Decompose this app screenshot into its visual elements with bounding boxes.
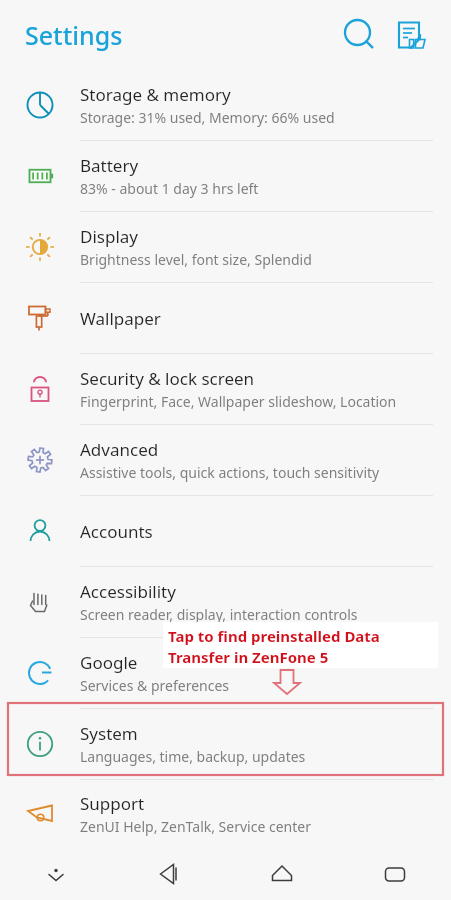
button[interactable]: Battery: [0, 141, 451, 212]
staticText: Languages, time, backup, updates: [80, 747, 306, 766]
button[interactable]: Accounts: [0, 496, 451, 567]
button[interactable]: Storage & memory: [0, 70, 451, 141]
button[interactable]: Security & lock screen: [0, 354, 451, 425]
staticText: Settings: [25, 18, 123, 52]
staticText: Accounts: [80, 520, 153, 543]
staticText: Tap to find preinstalled Data Transfer i…: [168, 626, 380, 668]
staticText: Screen reader, display, interaction cont…: [80, 605, 358, 624]
staticText: Display: [80, 225, 138, 248]
staticText: Security & lock screen: [80, 367, 255, 390]
staticText: Battery: [80, 154, 139, 177]
staticText: Storage & memory: [80, 83, 231, 106]
staticText: Assistive tools, quick actions, touch se…: [80, 463, 380, 482]
button[interactable]: Search: [333, 9, 385, 61]
button[interactable]: Hide navigation bar: [0, 848, 112, 900]
button[interactable]: Back: [112, 848, 225, 900]
button[interactable]: Advanced: [0, 425, 451, 496]
button[interactable]: Accessibility: [0, 567, 451, 638]
button[interactable]: Recent apps: [338, 848, 451, 900]
button[interactable]: Display: [0, 212, 451, 283]
staticText: Brightness level, font size, Splendid: [80, 250, 312, 269]
staticText: Support: [80, 792, 145, 815]
button[interactable]: System: [0, 709, 451, 780]
button[interactable]: Support: [0, 780, 451, 848]
staticText: Services & preferences: [80, 676, 230, 695]
button[interactable]: Home: [225, 848, 338, 900]
staticText: Storage: 31% used, Memory: 66% used: [80, 108, 335, 127]
staticText: 83% - about 1 day 3 hrs left: [80, 179, 259, 198]
button[interactable]: Wallpaper: [0, 283, 451, 354]
staticText: Fingerprint, Face, Wallpaper slideshow, …: [80, 392, 397, 411]
staticText: Advanced: [80, 438, 159, 461]
staticText: Accessibility: [80, 580, 176, 603]
button[interactable]: Google: [0, 638, 451, 709]
staticText: ZenUI Help, ZenTalk, Service center: [80, 817, 311, 836]
staticText: Google: [80, 651, 138, 674]
staticText: System: [80, 722, 138, 745]
button[interactable]: Feedback: [385, 9, 437, 61]
staticText: Wallpaper: [80, 307, 161, 330]
